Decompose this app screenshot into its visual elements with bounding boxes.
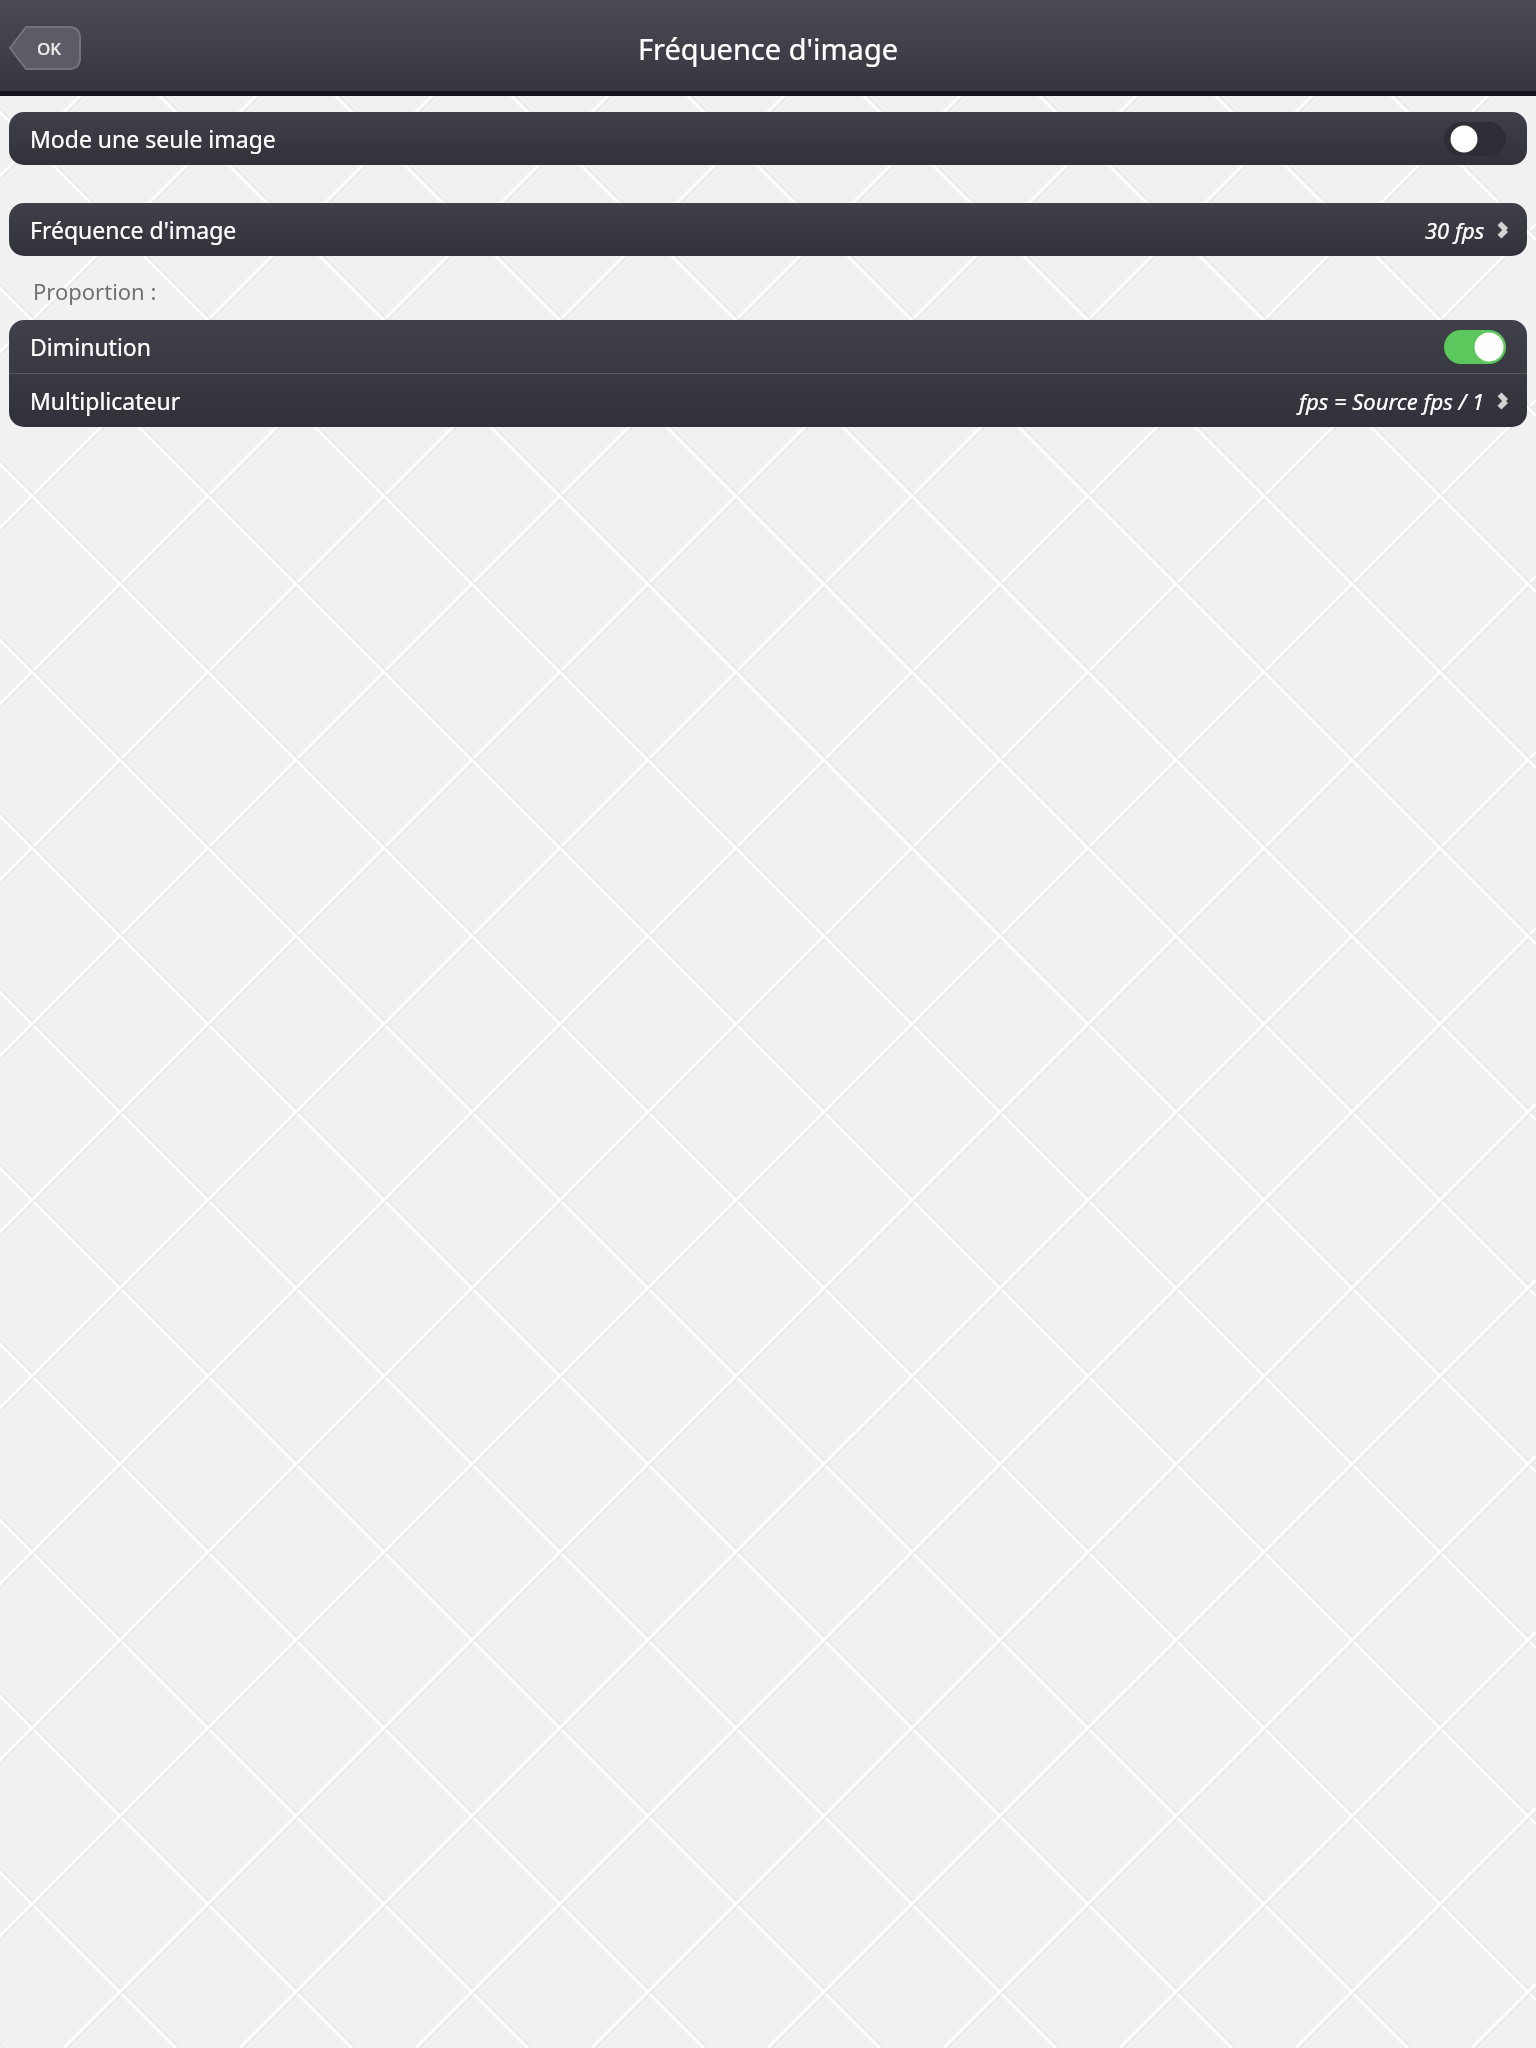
button[interactable]: Multiplicateur	[9, 374, 1527, 427]
staticText: Fréquence d'image	[638, 29, 899, 68]
staticText: Mode une seule image	[30, 123, 276, 154]
staticText: fps = Source fps / 1	[1299, 386, 1485, 416]
staticText: Multiplicateur	[30, 385, 181, 416]
button[interactable]: Mode une seule image	[9, 112, 1527, 165]
staticText: Proportion :	[33, 276, 157, 306]
staticText: Fréquence d'image	[30, 214, 237, 245]
button[interactable]: OK	[10, 27, 80, 69]
staticText: OK	[37, 37, 62, 60]
button[interactable]: Enabled	[1444, 330, 1506, 364]
button[interactable]: Diminution	[9, 320, 1527, 373]
button[interactable]: Fréquence d'image	[9, 203, 1527, 256]
staticText: Diminution	[30, 331, 151, 362]
staticText: 30 fps	[1425, 215, 1485, 245]
button[interactable]: Disabled	[1444, 122, 1506, 156]
